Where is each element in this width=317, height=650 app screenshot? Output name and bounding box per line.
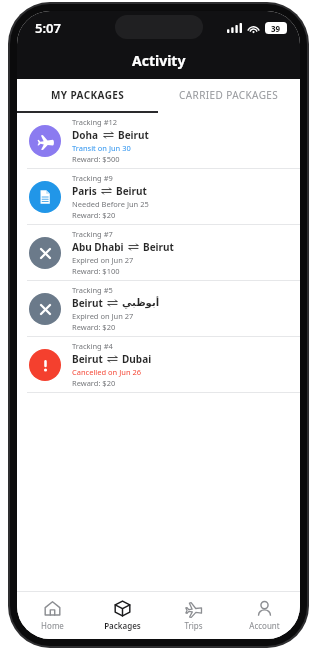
staticText: أبوظبي — [122, 297, 160, 309]
staticText: Beirut — [72, 296, 103, 310]
staticText: Activity — [132, 51, 186, 70]
staticText: Reward: $20 — [72, 322, 116, 332]
staticText: Home — [41, 620, 64, 631]
staticText: Tracking #9 — [72, 173, 113, 183]
staticText: Beirut — [143, 240, 174, 254]
staticText: Tracking #5 — [72, 285, 113, 295]
staticText: 39 — [271, 23, 281, 34]
staticText: Trips — [184, 620, 203, 631]
staticText: Beirut — [72, 352, 103, 366]
staticText: Tracking #12 — [72, 117, 118, 127]
staticText: Transit on Jun 30 — [72, 143, 131, 153]
staticText: Reward: $20 — [72, 210, 116, 220]
other: Packages — [114, 600, 131, 617]
staticText: CARRIED PACKAGES — [179, 88, 279, 102]
other: Trips — [185, 600, 202, 617]
staticText: MY PACKAGES — [51, 88, 125, 102]
button[interactable]: Home — [17, 592, 87, 639]
button[interactable]: Tracking #7 — [17, 225, 300, 280]
button[interactable]: Tracking #9 — [17, 169, 300, 224]
staticText: Reward: $100 — [72, 266, 120, 276]
button[interactable]: Account — [229, 592, 300, 639]
staticText: Packages — [104, 620, 141, 631]
staticText: Expired on Jun 27 — [72, 311, 134, 321]
staticText: Beirut — [116, 184, 147, 198]
button[interactable]: Tracking #12 — [17, 113, 300, 168]
staticText: 5:07 — [35, 19, 61, 37]
button[interactable]: MY PACKAGES — [17, 79, 158, 111]
button[interactable]: Tracking #5 — [17, 281, 300, 336]
other: Account — [256, 600, 273, 617]
staticText: Reward: $500 — [72, 154, 120, 164]
button[interactable]: CARRIED PACKAGES — [158, 79, 300, 111]
staticText: Beirut — [118, 128, 149, 142]
other: Home — [44, 600, 61, 617]
staticText: Reward: $20 — [72, 378, 116, 388]
staticText: Tracking #4 — [72, 341, 113, 351]
staticText: Tracking #7 — [72, 229, 113, 239]
staticText: Paris — [72, 184, 97, 198]
button[interactable]: Packages — [87, 592, 158, 639]
staticText: Needed Before Jun 25 — [72, 199, 149, 209]
button[interactable]: Trips — [158, 592, 229, 639]
staticText: Cancelled on Jun 26 — [72, 367, 142, 377]
staticText: Expired on Jun 27 — [72, 255, 134, 265]
staticText: Account — [249, 620, 280, 631]
button[interactable]: Tracking #4 — [17, 337, 300, 392]
staticText: Dubai — [122, 352, 152, 366]
staticText: Doha — [72, 128, 99, 142]
staticText: Abu Dhabi — [72, 240, 124, 254]
